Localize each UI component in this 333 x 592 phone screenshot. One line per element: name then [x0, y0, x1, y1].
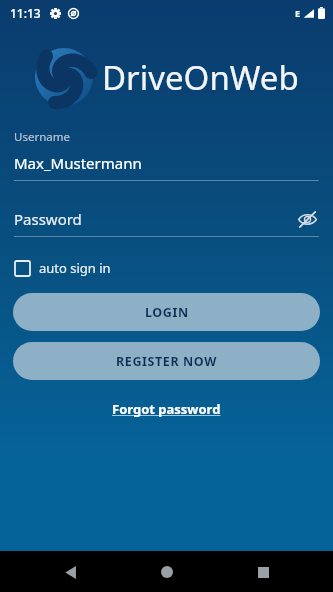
staticText: Password	[14, 209, 295, 229]
staticText: E	[295, 7, 301, 19]
button[interactable]: Show password	[295, 207, 319, 231]
staticText: 11:13	[10, 5, 41, 21]
button[interactable]: auto sign in	[12, 256, 114, 280]
button[interactable]: Forgot password	[108, 396, 225, 422]
staticText: REGISTER NOW	[116, 353, 217, 370]
button[interactable]: REGISTER NOW	[13, 342, 320, 380]
staticText: DriveOnWeb	[102, 55, 299, 100]
button[interactable]: Back	[56, 558, 84, 586]
staticText: LOGIN	[145, 304, 189, 321]
button[interactable]: LOGIN	[13, 293, 320, 331]
staticText: Username	[14, 129, 70, 145]
staticText: Max_Mustermann	[14, 153, 142, 173]
button[interactable]: Recent apps	[249, 558, 277, 586]
staticText: Forgot password	[112, 400, 221, 418]
staticText: auto sign in	[39, 259, 111, 277]
button[interactable]: Home	[153, 558, 181, 586]
